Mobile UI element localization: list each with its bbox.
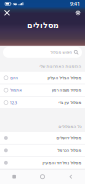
button[interactable]: בית [0,169,28,184]
staticText: ההזמנות האחרונות שלי [39,64,81,68]
button[interactable]: הגדרות [72,8,83,18]
staticText: אתמול [10,88,22,92]
button[interactable]: מסלול ירושלים [0,132,85,144]
button[interactable]: אתמול [0,84,85,97]
button[interactable]: סגור [1,8,12,18]
staticText: מסלול הכרמל [57,148,81,153]
staticText: חיפוש מסלול [50,50,72,54]
staticText: 9:41 [70,0,80,7]
button[interactable]: חיפוש [28,169,57,184]
staticText: 12.3 [10,100,17,105]
staticText: מסלול מצפה רמון [51,88,81,92]
staticText: מסלול עין גדי [58,100,81,105]
button[interactable]: מסלול הכרמל [0,144,85,157]
button[interactable]: היום [0,72,85,84]
staticText: היום [10,75,18,80]
staticText: כל המסלולים [58,124,81,129]
button[interactable]: חזור [57,169,85,184]
button[interactable]: 12.3 [0,97,85,109]
button[interactable]: חיפוש מסלול [3,47,82,58]
staticText: מסלול ירושלים [56,136,81,140]
staticText: מסלול הגליל העליון [47,75,81,80]
staticText: מסלולים [26,21,58,30]
staticText: מסלול נחל דוד והמעיין [42,160,81,165]
button[interactable]: מסלול נחל דוד והמעיין [0,157,85,169]
